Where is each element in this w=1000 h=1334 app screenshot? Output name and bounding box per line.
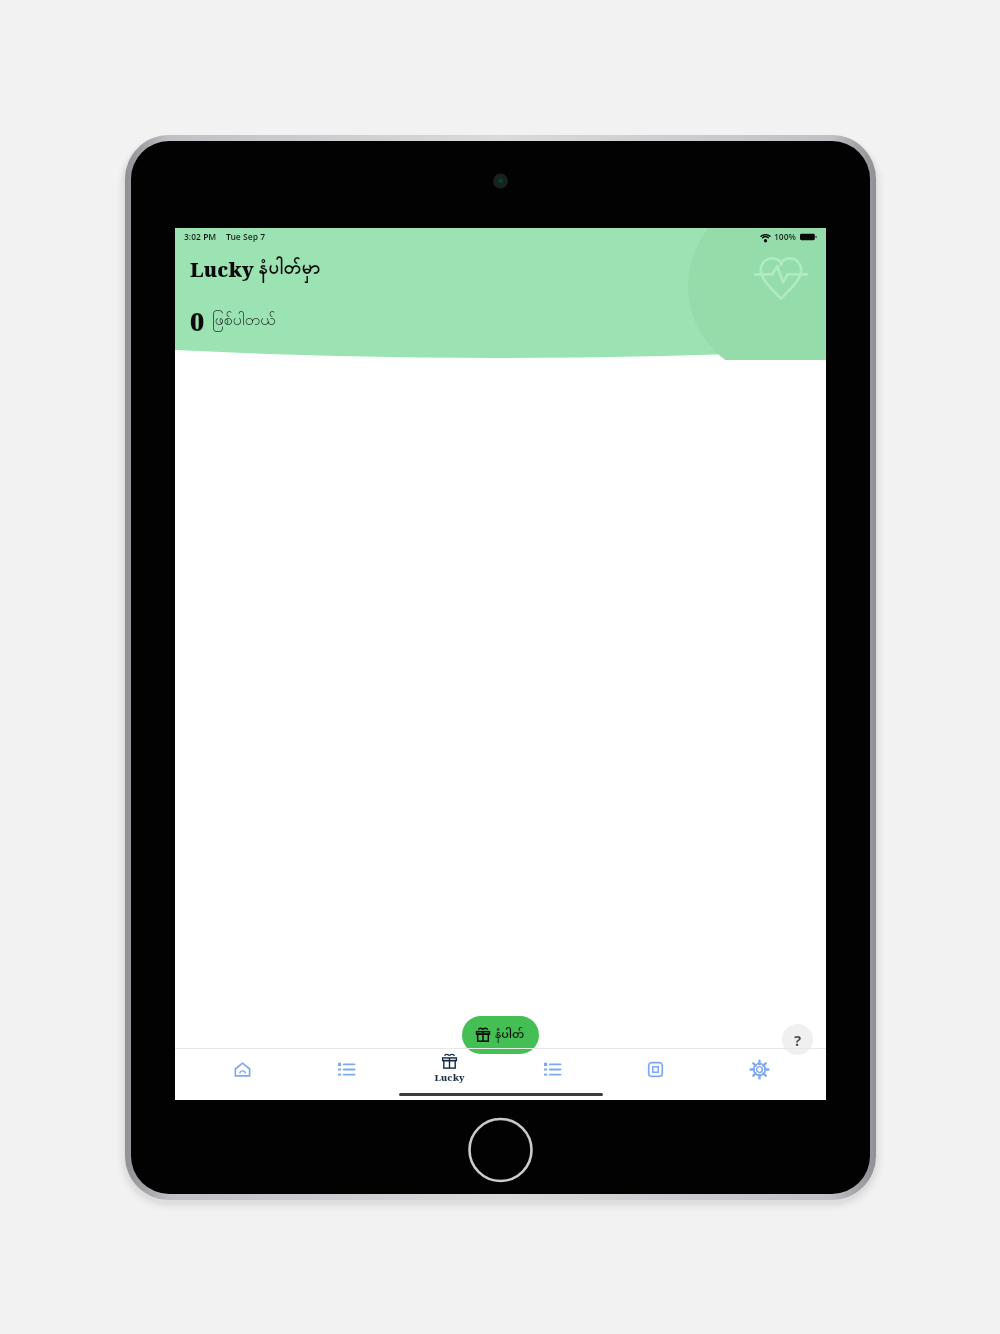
staticText: Tue Sep 7	[226, 231, 266, 243]
staticText: ?	[794, 1030, 802, 1050]
staticText: နံပါတ်မှာ	[258, 255, 321, 283]
button[interactable]: Lucky	[413, 1049, 485, 1089]
button[interactable]: နံပါတ်	[462, 1016, 539, 1054]
staticText: Lucky	[190, 256, 254, 283]
button[interactable]: List	[310, 1049, 382, 1089]
button[interactable]: Help	[782, 1024, 813, 1055]
staticText: နံပါတ်	[495, 1023, 525, 1047]
button[interactable]: Records	[516, 1049, 588, 1089]
button[interactable]: Scan	[619, 1049, 691, 1089]
staticText: Lucky	[434, 1071, 465, 1084]
button[interactable]: Settings	[723, 1049, 795, 1089]
staticText: ဖြစ်ပါတယ်	[212, 309, 276, 333]
staticText: 100%	[774, 231, 797, 243]
staticText: 0	[190, 304, 205, 338]
staticText: 3:02 PM	[184, 231, 217, 243]
other: Health	[754, 250, 808, 304]
button[interactable]: Home	[206, 1049, 278, 1089]
